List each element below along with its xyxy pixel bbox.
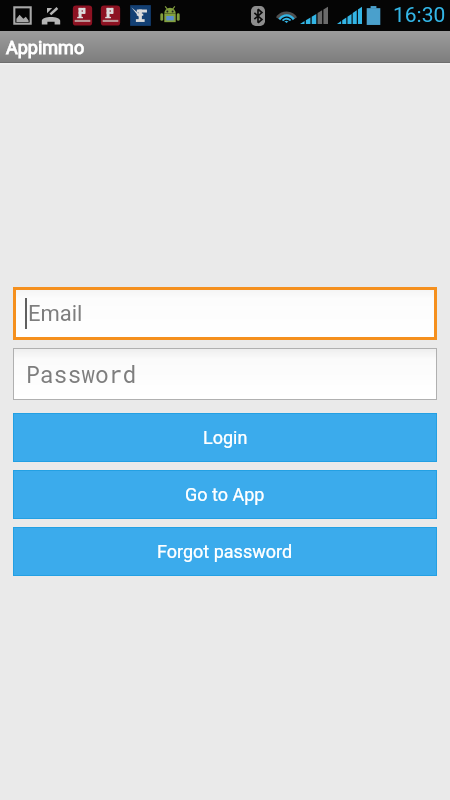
button[interactable]: Forgot password	[13, 527, 437, 576]
button[interactable]: Login	[13, 413, 437, 462]
staticText: Password	[26, 359, 137, 389]
staticText: Go to App	[185, 484, 265, 505]
staticText: Email	[28, 301, 83, 327]
staticText: Login	[203, 427, 248, 448]
staticText: Forgot password	[157, 541, 293, 562]
staticText: Appimmo	[6, 37, 85, 58]
button[interactable]: Password	[13, 348, 437, 400]
button[interactable]: Email	[13, 287, 437, 340]
button[interactable]: Go to App	[13, 470, 437, 519]
staticText: 16:30	[393, 3, 446, 28]
